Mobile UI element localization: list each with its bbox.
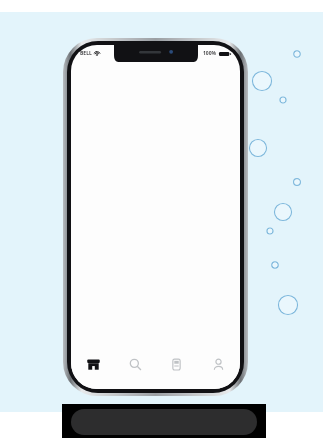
button[interactable]: Account <box>198 349 238 379</box>
button[interactable]: Card <box>156 349 196 379</box>
staticText: 100% <box>203 50 217 57</box>
staticText: BELL <box>80 50 92 57</box>
button[interactable]: Search <box>115 349 155 379</box>
button[interactable]: Shop <box>73 349 113 379</box>
